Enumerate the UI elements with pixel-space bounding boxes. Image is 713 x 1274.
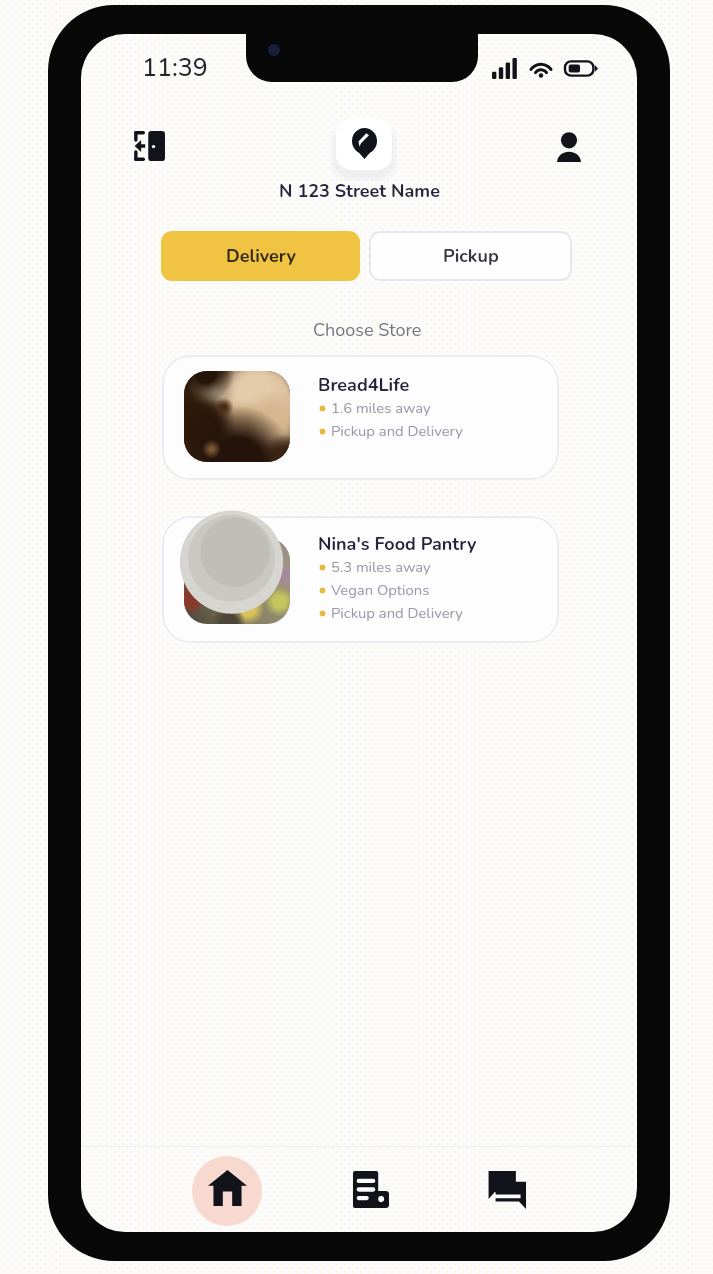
button[interactable]: Menu bbox=[119, 116, 179, 176]
button[interactable]: Profile bbox=[539, 116, 599, 176]
staticText: Bread4Life bbox=[318, 373, 410, 398]
staticText: Choose Store bbox=[313, 318, 422, 343]
staticText: Pickup and Delivery bbox=[331, 421, 463, 441]
button[interactable]: Messages bbox=[471, 1156, 541, 1226]
staticText: Pickup and Delivery bbox=[331, 603, 463, 623]
staticText: 5.3 miles away bbox=[331, 557, 431, 577]
button[interactable] bbox=[162, 355, 559, 480]
staticText: 11:39 bbox=[142, 51, 208, 85]
staticText: Nina's Food Pantry bbox=[318, 532, 477, 557]
button[interactable]: Pickup bbox=[369, 231, 572, 281]
staticText: Pickup bbox=[443, 244, 499, 269]
button[interactable]: Home bbox=[192, 1156, 262, 1226]
staticText: Delivery bbox=[226, 244, 296, 269]
button[interactable]: Delivery bbox=[161, 231, 360, 281]
staticText: 1.6 miles away bbox=[331, 398, 431, 418]
staticText: N 123 Street Name bbox=[279, 179, 440, 204]
staticText: Vegan Options bbox=[331, 580, 430, 600]
button[interactable]: Edit location bbox=[336, 119, 392, 170]
button[interactable]: Orders bbox=[336, 1156, 406, 1226]
button[interactable] bbox=[162, 516, 559, 643]
